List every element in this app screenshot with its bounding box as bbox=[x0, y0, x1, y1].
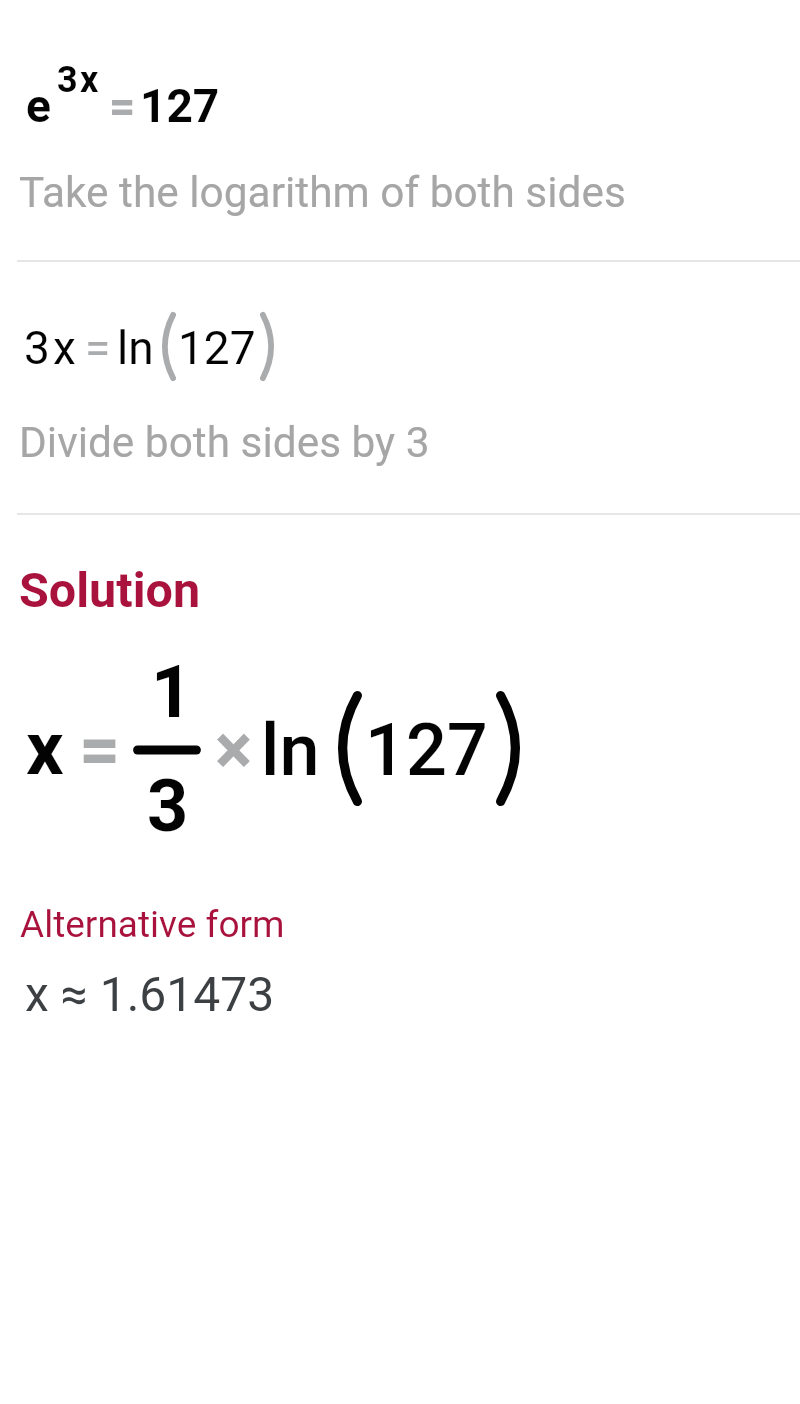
staticText: 3 bbox=[24, 321, 50, 375]
staticText: 127 bbox=[365, 708, 488, 792]
staticText: Alternative form bbox=[20, 903, 285, 946]
staticText: x bbox=[26, 705, 64, 792]
staticText: 3 bbox=[147, 764, 189, 848]
staticText: 1 bbox=[151, 650, 193, 734]
button[interactable]: Step 2: 3x equals ln of 127 bbox=[0, 262, 800, 512]
staticText: Take the logarithm of both sides bbox=[19, 168, 626, 218]
staticText: Divide both sides by 3 bbox=[19, 418, 430, 468]
staticText: 127 bbox=[140, 79, 220, 133]
staticText: 127 bbox=[178, 321, 256, 375]
button[interactable]: Alternative form: x is approximately 1.6… bbox=[0, 880, 800, 1030]
staticText: Solution bbox=[19, 562, 201, 619]
button[interactable]: Solution: x equals one third times ln of… bbox=[0, 515, 800, 875]
staticText: = bbox=[109, 79, 136, 133]
staticText: x bbox=[80, 59, 99, 101]
button[interactable]: Step 1: e to the 3x equals 127 bbox=[0, 30, 800, 260]
staticText: e bbox=[26, 79, 51, 133]
staticText: x ≈ 1.61473 bbox=[25, 966, 275, 1022]
staticText: 3 bbox=[57, 59, 78, 101]
staticText: × bbox=[215, 709, 253, 791]
staticText: = bbox=[85, 321, 111, 375]
staticText: ln bbox=[261, 708, 320, 792]
staticText: x bbox=[53, 321, 76, 375]
staticText: = bbox=[79, 707, 121, 791]
staticText: ln bbox=[117, 321, 154, 375]
